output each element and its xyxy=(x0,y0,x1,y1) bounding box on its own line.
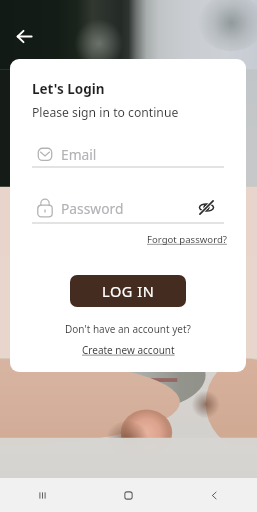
staticText: Forgot password? xyxy=(147,233,227,246)
button[interactable]: Recent apps xyxy=(0,478,85,512)
button[interactable]: Create new account xyxy=(80,343,177,357)
button[interactable]: Home xyxy=(85,478,171,512)
button[interactable]: Back xyxy=(171,478,257,512)
staticText: Email xyxy=(61,145,97,164)
staticText: LOG IN xyxy=(102,281,155,301)
staticText: Create new account xyxy=(82,343,175,357)
button[interactable]: Forgot password? xyxy=(146,231,228,248)
button[interactable]: LOG IN xyxy=(70,275,186,307)
button[interactable]: Back xyxy=(9,21,39,51)
staticText: Please sign in to continue xyxy=(32,104,179,121)
button[interactable]: Show password xyxy=(196,197,216,217)
staticText: Password xyxy=(61,199,124,218)
staticText: Let's Login xyxy=(32,80,105,98)
staticText: Don't have an account yet? xyxy=(65,322,191,336)
